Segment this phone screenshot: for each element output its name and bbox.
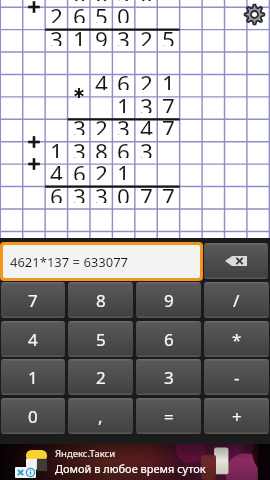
staticText: 3 [95,181,108,203]
staticText: 1 [73,24,86,46]
staticText: 1 [28,366,38,389]
staticText: 3 [117,113,130,135]
staticText: 1 [162,68,175,90]
staticText: 6 [164,328,174,351]
staticText: 3 [140,91,153,113]
staticText: 8 [96,289,106,312]
staticText: 4 [50,158,63,180]
staticText: 1 [117,158,130,180]
staticText: - [234,366,240,389]
staticText: * [232,328,242,351]
button[interactable]: 7 [1,282,65,318]
staticText: 0 [140,0,153,1]
staticText: 6 [117,68,130,90]
button[interactable]: 4621*137 = 633077 [3,245,200,278]
button[interactable]: / [204,282,269,318]
staticText: 2 [95,158,108,180]
staticText: 5 [162,24,175,46]
staticText: 9 [164,289,174,312]
staticText: 3 [117,24,130,46]
button[interactable]: Close ad [16,468,35,477]
staticText: Яндекс.Такси [55,447,116,460]
staticText: 6 [73,158,86,180]
staticText: 6 [73,1,86,23]
staticText: 0 [117,1,130,23]
staticText: 7 [28,289,38,312]
staticText: 3 [73,181,86,203]
staticText: 2 [140,24,153,46]
button[interactable]: 3 [136,359,201,395]
button[interactable]: + [204,398,269,434]
staticText: Домой в любое время суток [55,461,206,476]
button[interactable]: , [68,398,133,434]
staticText: 3 [140,136,153,158]
staticText: 6 [117,136,130,158]
staticText: 5 [96,328,106,351]
button[interactable]: 0 [1,398,65,434]
staticText: 6 [95,0,108,1]
staticText: 9 [95,24,108,46]
button[interactable]: Backspace [204,243,268,279]
button[interactable]: 2 [68,359,133,395]
staticText: 7 [162,113,175,135]
staticText: 7 [140,181,153,203]
staticText: 5 [95,1,108,23]
staticText: 2 [96,366,106,389]
staticText: 0 [28,405,38,428]
staticText: 4 [140,113,153,135]
button[interactable]: 6 [136,321,201,357]
button[interactable]: - [204,359,269,395]
button[interactable]: 4 [1,321,65,357]
staticText: 3 [73,136,86,158]
staticText: 7 [162,91,175,113]
staticText: 6 [73,0,86,1]
button[interactable]: 9 [136,282,201,318]
staticText: 1 [50,136,63,158]
staticText: 5 [117,0,130,1]
staticText: 4 [28,328,38,351]
button[interactable]: * [204,321,269,357]
staticText: / [233,289,240,312]
staticText: 3 [50,24,63,46]
staticText: 7 [162,181,175,203]
staticText: 2 [95,113,108,135]
staticText: 1 [117,91,130,113]
staticText: 3 [73,113,86,135]
staticText: 8 [95,136,108,158]
staticText: 6 [50,181,63,203]
button[interactable]: Settings [242,2,266,26]
button[interactable]: = [136,398,201,434]
staticText: = [164,405,174,428]
staticText: , [98,405,103,428]
staticText: 3 [164,366,174,389]
staticText: 4621*137 = 633077 [10,253,129,271]
staticText: + [232,405,242,428]
button[interactable]: 5 [68,321,133,357]
staticText: 2 [140,68,153,90]
staticText: 2 [50,1,63,23]
staticText: 4 [95,68,108,90]
staticText: 0 [117,181,130,203]
button[interactable]: 8 [68,282,133,318]
button[interactable]: 1 [1,359,65,395]
